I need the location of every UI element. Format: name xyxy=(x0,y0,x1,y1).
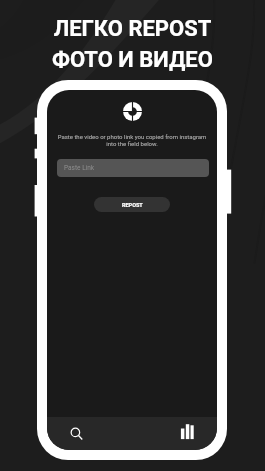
button[interactable]: Paste Link xyxy=(57,159,209,177)
staticText: REPOST xyxy=(122,202,143,208)
staticText: Paste Link xyxy=(64,164,95,172)
staticText: ЛЕГКО REPOST ФОТО И ВИДЕО xyxy=(0,16,265,72)
staticText: Paste the video or photo link you copied… xyxy=(52,133,212,148)
button[interactable]: Search xyxy=(60,418,91,449)
button[interactable]: REPOST xyxy=(94,197,170,212)
button[interactable]: Statistics xyxy=(172,416,202,446)
other: App logo xyxy=(123,102,142,121)
